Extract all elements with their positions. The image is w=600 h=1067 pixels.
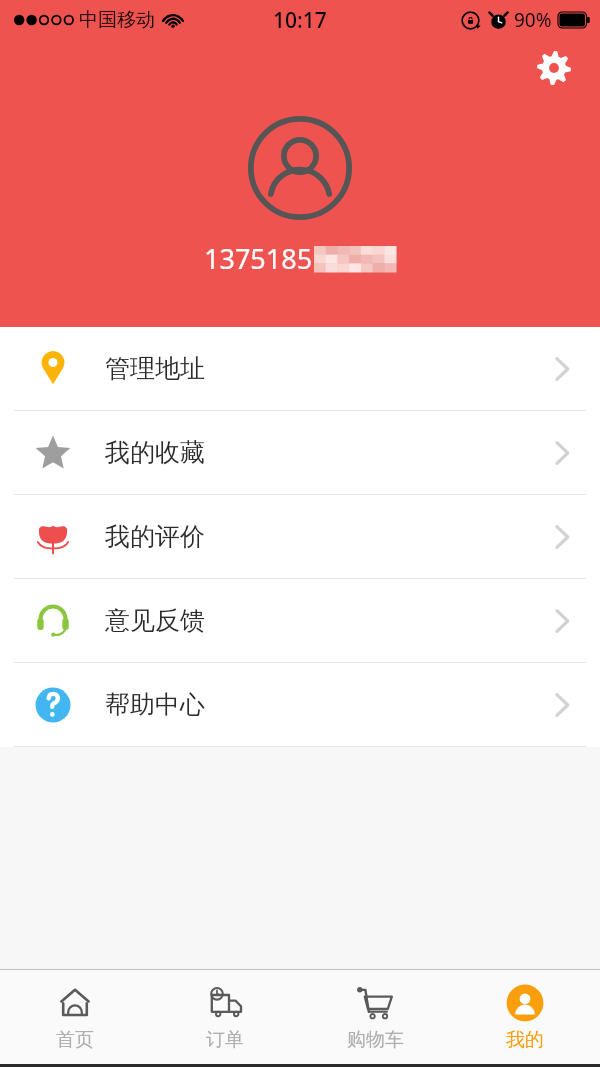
staticText: 我的 [506,1028,544,1052]
button[interactable]: 帮助中心 [0,663,600,746]
staticText: 10:17 [273,6,327,35]
staticText: 帮助中心 [105,689,205,720]
button[interactable]: 管理地址 [0,327,600,410]
button[interactable]: 意见反馈 [0,579,600,662]
button[interactable]: 我的评价 [0,495,600,578]
staticText: 1375185 [204,240,313,277]
staticText: 订单 [206,1028,244,1052]
staticText: 我的评价 [105,521,205,552]
button[interactable]: 订单 [150,970,300,1064]
button[interactable]: 首页 [0,970,150,1064]
staticText: 管理地址 [105,353,205,384]
staticText: 购物车 [347,1028,404,1052]
staticText: 首页 [56,1028,94,1052]
staticText: 90% [514,7,552,33]
staticText: 我的收藏 [105,437,205,468]
staticText: 意见反馈 [105,605,205,636]
staticText: 中国移动 [79,8,155,32]
button[interactable]: Settings [532,46,576,90]
button[interactable]: 购物车 [300,970,450,1064]
button[interactable]: 我的收藏 [0,411,600,494]
button[interactable]: 我的 [450,970,600,1064]
